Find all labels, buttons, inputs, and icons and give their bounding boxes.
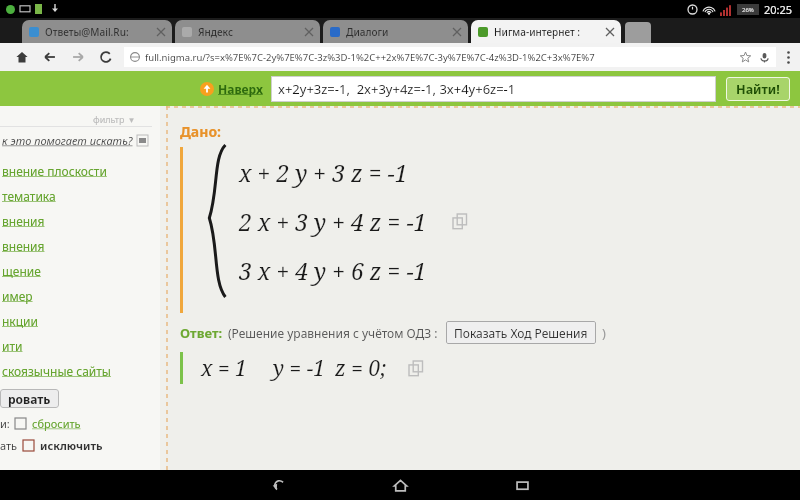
button[interactable]: щение: [0, 258, 160, 283]
staticText: 2 x + 3 y + 4 z = −1: [239, 206, 427, 237]
staticText: Найти!: [736, 81, 780, 98]
button[interactable]: Показать Ход Решения: [446, 321, 596, 344]
staticText: Нигма-интернет :: [494, 25, 581, 39]
staticText: x = 1: [201, 354, 247, 383]
staticText: Ответы@Mail.Ru:: [45, 25, 129, 39]
staticText: x + 2 y + 3 z = −1: [239, 157, 408, 188]
staticText: 26%: [742, 6, 754, 14]
staticText: Диалоги: [346, 25, 389, 39]
staticText: сбросить: [32, 416, 81, 431]
staticText: Дано:: [180, 122, 222, 141]
button[interactable]: Forward: [64, 43, 92, 71]
staticText: Показать Ход Решения: [454, 325, 588, 341]
staticText: исключить: [40, 438, 103, 453]
staticText: Яндекс: [198, 25, 233, 39]
button[interactable]: Close tab: [157, 28, 165, 36]
staticText: (Решение уравнения с учётом ОДЗ :: [228, 325, 438, 341]
button[interactable]: x+2y+3z=-1, 2x+3y+4z=-1, 3x+4y+6z=-1: [271, 76, 716, 102]
button[interactable]: ровать: [0, 389, 59, 408]
button[interactable]: Close tab: [305, 28, 313, 36]
button[interactable]: Home: [8, 43, 36, 71]
button[interactable]: Bookmark: [740, 52, 751, 63]
staticText: 3 x + 4 y + 6 z = −1: [239, 255, 427, 286]
staticText: нкции: [2, 313, 38, 329]
button[interactable]: Back: [36, 43, 64, 71]
staticText: x+2y+3z=-1, 2x+3y+4z=-1, 3x+4y+6z=-1: [278, 80, 516, 98]
button[interactable]: нкции: [0, 308, 160, 333]
button[interactable]: Copy: [409, 361, 424, 376]
staticText: скоязычные сайты: [2, 363, 111, 379]
button[interactable]: внения: [0, 208, 160, 233]
staticText: внения: [2, 238, 45, 254]
button[interactable]: ать: [0, 438, 103, 453]
button[interactable]: внения: [0, 233, 160, 258]
button[interactable]: Наверх: [200, 81, 263, 97]
button[interactable]: Recent apps: [500, 470, 544, 500]
button[interactable]: Back: [256, 470, 300, 500]
button[interactable]: ити: [0, 333, 160, 358]
staticText: имер: [2, 288, 33, 304]
staticText: и:: [0, 416, 10, 431]
staticText: тематика: [2, 188, 56, 204]
button[interactable]: Copy: [453, 214, 468, 229]
button[interactable]: тематика: [0, 183, 160, 208]
staticText: Ответ:: [180, 324, 223, 342]
button[interactable]: Close tab: [453, 28, 461, 36]
button[interactable]: внение плоскости: [0, 158, 160, 183]
staticText: y = −1: [273, 354, 325, 383]
button[interactable]: к это помогает искать?: [0, 133, 148, 148]
button[interactable]: Ответы@Mail.Ru:: [22, 20, 172, 43]
button[interactable]: Reload: [92, 43, 120, 71]
button[interactable]: Нигма-интернет :: [471, 20, 621, 43]
staticText: ): [602, 324, 606, 342]
staticText: ити: [2, 338, 23, 354]
button[interactable]: и:: [0, 416, 81, 431]
staticText: внение плоскости: [2, 163, 107, 179]
staticText: фильтр ▾: [93, 113, 134, 125]
staticText: full.nigma.ru/?s=x%7E%7C-2y%7E%7C-3z%3D-…: [145, 51, 595, 64]
staticText: 20:25: [764, 2, 793, 17]
staticText: ать: [0, 438, 18, 453]
button[interactable]: More options: [776, 43, 800, 71]
button[interactable]: скоязычные сайты: [0, 358, 160, 383]
button[interactable]: New tab: [625, 22, 651, 43]
button[interactable]: full.nigma.ru/?s=x%7E%7C-2y%7E%7C-3z%3D-…: [124, 47, 776, 67]
button[interactable]: Voice search: [759, 52, 770, 63]
button[interactable]: Close tab: [606, 28, 614, 36]
staticText: внения: [2, 213, 45, 229]
button[interactable]: Яндекс: [175, 20, 320, 43]
staticText: Наверх: [218, 81, 263, 97]
staticText: щение: [2, 263, 41, 279]
button[interactable]: имер: [0, 283, 160, 308]
button[interactable]: Диалоги: [323, 20, 468, 43]
staticText: ровать: [8, 391, 51, 407]
staticText: z = 0;: [335, 354, 387, 383]
button[interactable]: Home: [378, 470, 422, 500]
button[interactable]: Найти!: [726, 77, 790, 101]
staticText: к это помогает искать?: [2, 133, 133, 148]
